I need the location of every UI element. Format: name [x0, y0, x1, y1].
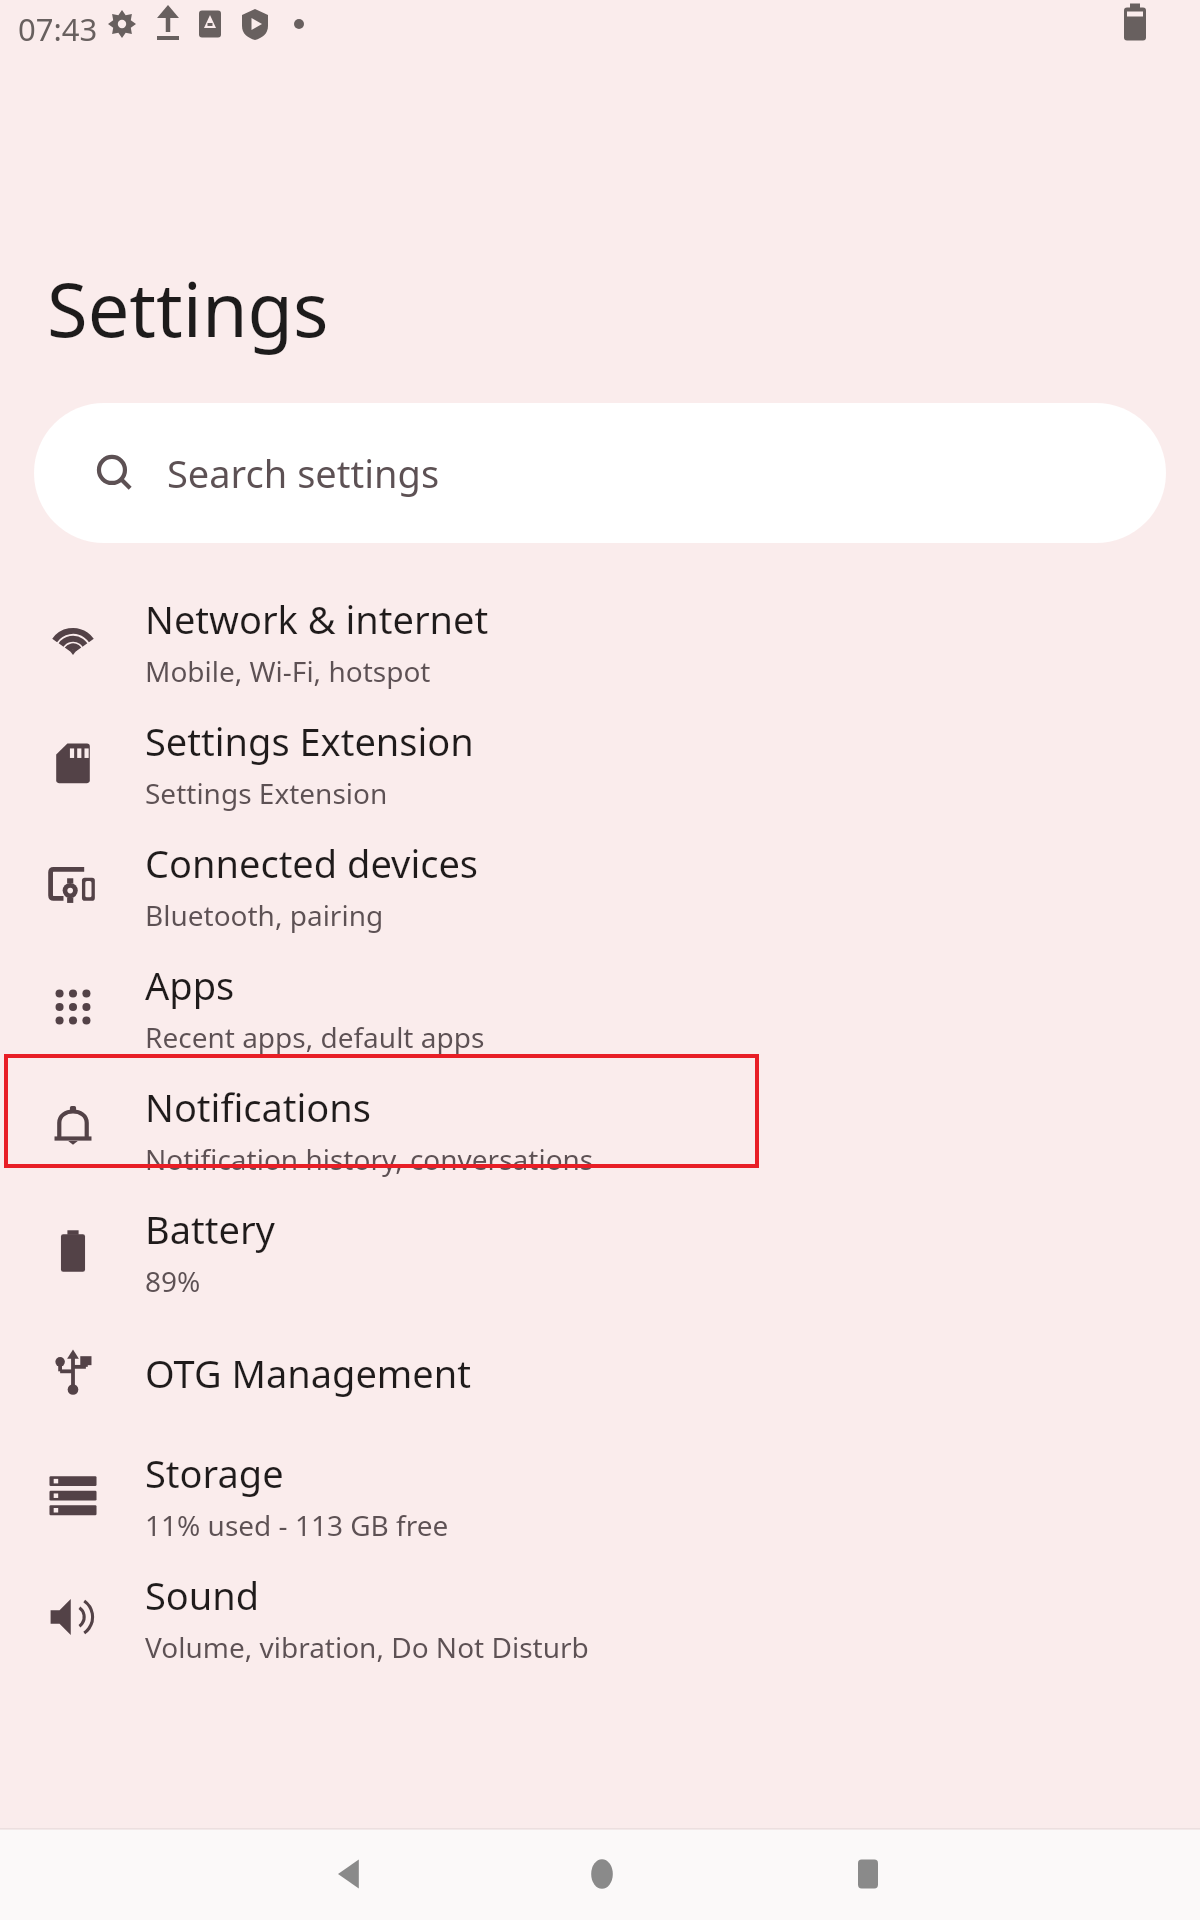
button[interactable]: OTG Management	[0, 1312, 1200, 1434]
staticText: Settings Extension	[145, 715, 474, 767]
staticText: Search settings	[167, 447, 440, 499]
staticText: Recent apps, default apps	[145, 1018, 485, 1056]
button[interactable]: Apps	[0, 946, 1200, 1068]
staticText: Network & internet	[145, 593, 489, 645]
button[interactable]: Notifications	[0, 1068, 1200, 1190]
staticText: Notification history, conversations	[145, 1140, 594, 1178]
staticText: Storage	[145, 1447, 284, 1499]
staticText: 89%	[145, 1262, 201, 1300]
staticText: 07:43	[18, 8, 98, 50]
staticText: Settings	[47, 258, 329, 359]
button[interactable]: Settings Extension	[0, 702, 1200, 824]
staticText: Volume, vibration, Do Not Disturb	[145, 1628, 589, 1666]
button[interactable]: Sound	[0, 1556, 1200, 1678]
staticText: Bluetooth, pairing	[145, 896, 384, 934]
button[interactable]: Recent apps	[818, 1828, 918, 1920]
button[interactable]: Network & internet	[0, 580, 1200, 702]
staticText: Sound	[145, 1569, 260, 1621]
button[interactable]: Search settings	[34, 403, 1166, 543]
staticText: 11% used - 113 GB free	[145, 1506, 449, 1544]
button[interactable]: Battery	[0, 1190, 1200, 1312]
staticText: OTG Management	[145, 1347, 472, 1399]
staticText: Battery	[145, 1203, 275, 1255]
button[interactable]: Back	[300, 1828, 400, 1920]
button[interactable]: Home	[552, 1828, 652, 1920]
button[interactable]: Connected devices	[0, 824, 1200, 946]
staticText: Mobile, Wi-Fi, hotspot	[145, 652, 431, 690]
staticText: Connected devices	[145, 837, 479, 889]
staticText: Notifications	[145, 1081, 372, 1133]
staticText: Apps	[145, 959, 235, 1011]
staticText: Settings Extension	[145, 774, 388, 812]
button[interactable]: Storage	[0, 1434, 1200, 1556]
